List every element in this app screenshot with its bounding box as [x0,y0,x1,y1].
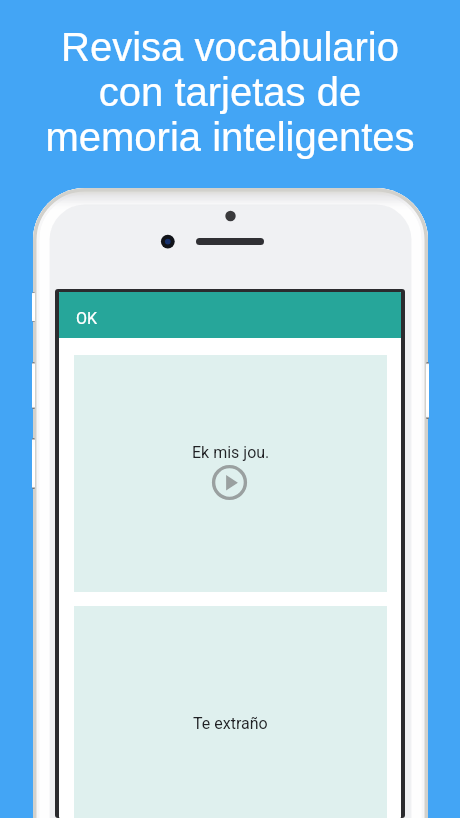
button[interactable]: Side button [426,362,429,419]
button[interactable]: Side button [32,438,35,489]
button[interactable]: Play audio [211,464,248,501]
button[interactable]: Side button [32,362,35,409]
button[interactable]: Ek mis jou. [74,355,387,592]
button[interactable]: Te extraño [74,606,387,818]
staticText: Te extraño [193,714,268,733]
staticText: Revisa vocabulario con tarjetas de memor… [0,25,460,160]
staticText: Ek mis jou. [192,443,270,462]
staticText: OK [76,309,98,328]
button[interactable]: Side button [32,292,35,322]
button[interactable]: OK [59,292,401,338]
